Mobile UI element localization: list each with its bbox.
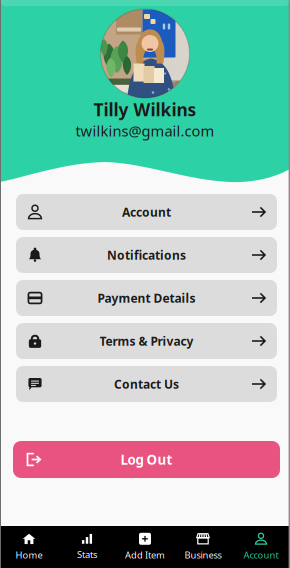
button[interactable]: Home: [0, 526, 58, 568]
staticText: Payment Details: [97, 290, 195, 306]
staticText: twilkins@gmail.com: [75, 121, 214, 140]
button[interactable]: Log Out: [13, 441, 280, 478]
staticText: Log Out: [120, 451, 172, 468]
staticText: Add Item: [125, 549, 165, 561]
button[interactable]: Business: [174, 526, 232, 568]
button[interactable]: Account: [232, 526, 290, 568]
staticText: Account: [243, 549, 278, 561]
button[interactable]: Stats: [58, 526, 116, 568]
staticText: Account: [122, 204, 171, 220]
staticText: Terms & Privacy: [99, 333, 193, 349]
staticText: Business: [184, 549, 221, 561]
button[interactable]: Add Item: [116, 526, 174, 568]
button[interactable]: Terms & Privacy: [16, 323, 277, 359]
staticText: Home: [15, 549, 42, 561]
staticText: Tilly Wilkins: [93, 98, 196, 121]
staticText: Stats: [77, 548, 97, 561]
button[interactable]: Notifications: [16, 237, 277, 273]
staticText: Contact Us: [114, 376, 179, 392]
staticText: Notifications: [107, 247, 186, 263]
button[interactable]: Account: [16, 194, 277, 230]
button[interactable]: Payment Details: [16, 280, 277, 316]
button[interactable]: Contact Us: [16, 366, 277, 402]
